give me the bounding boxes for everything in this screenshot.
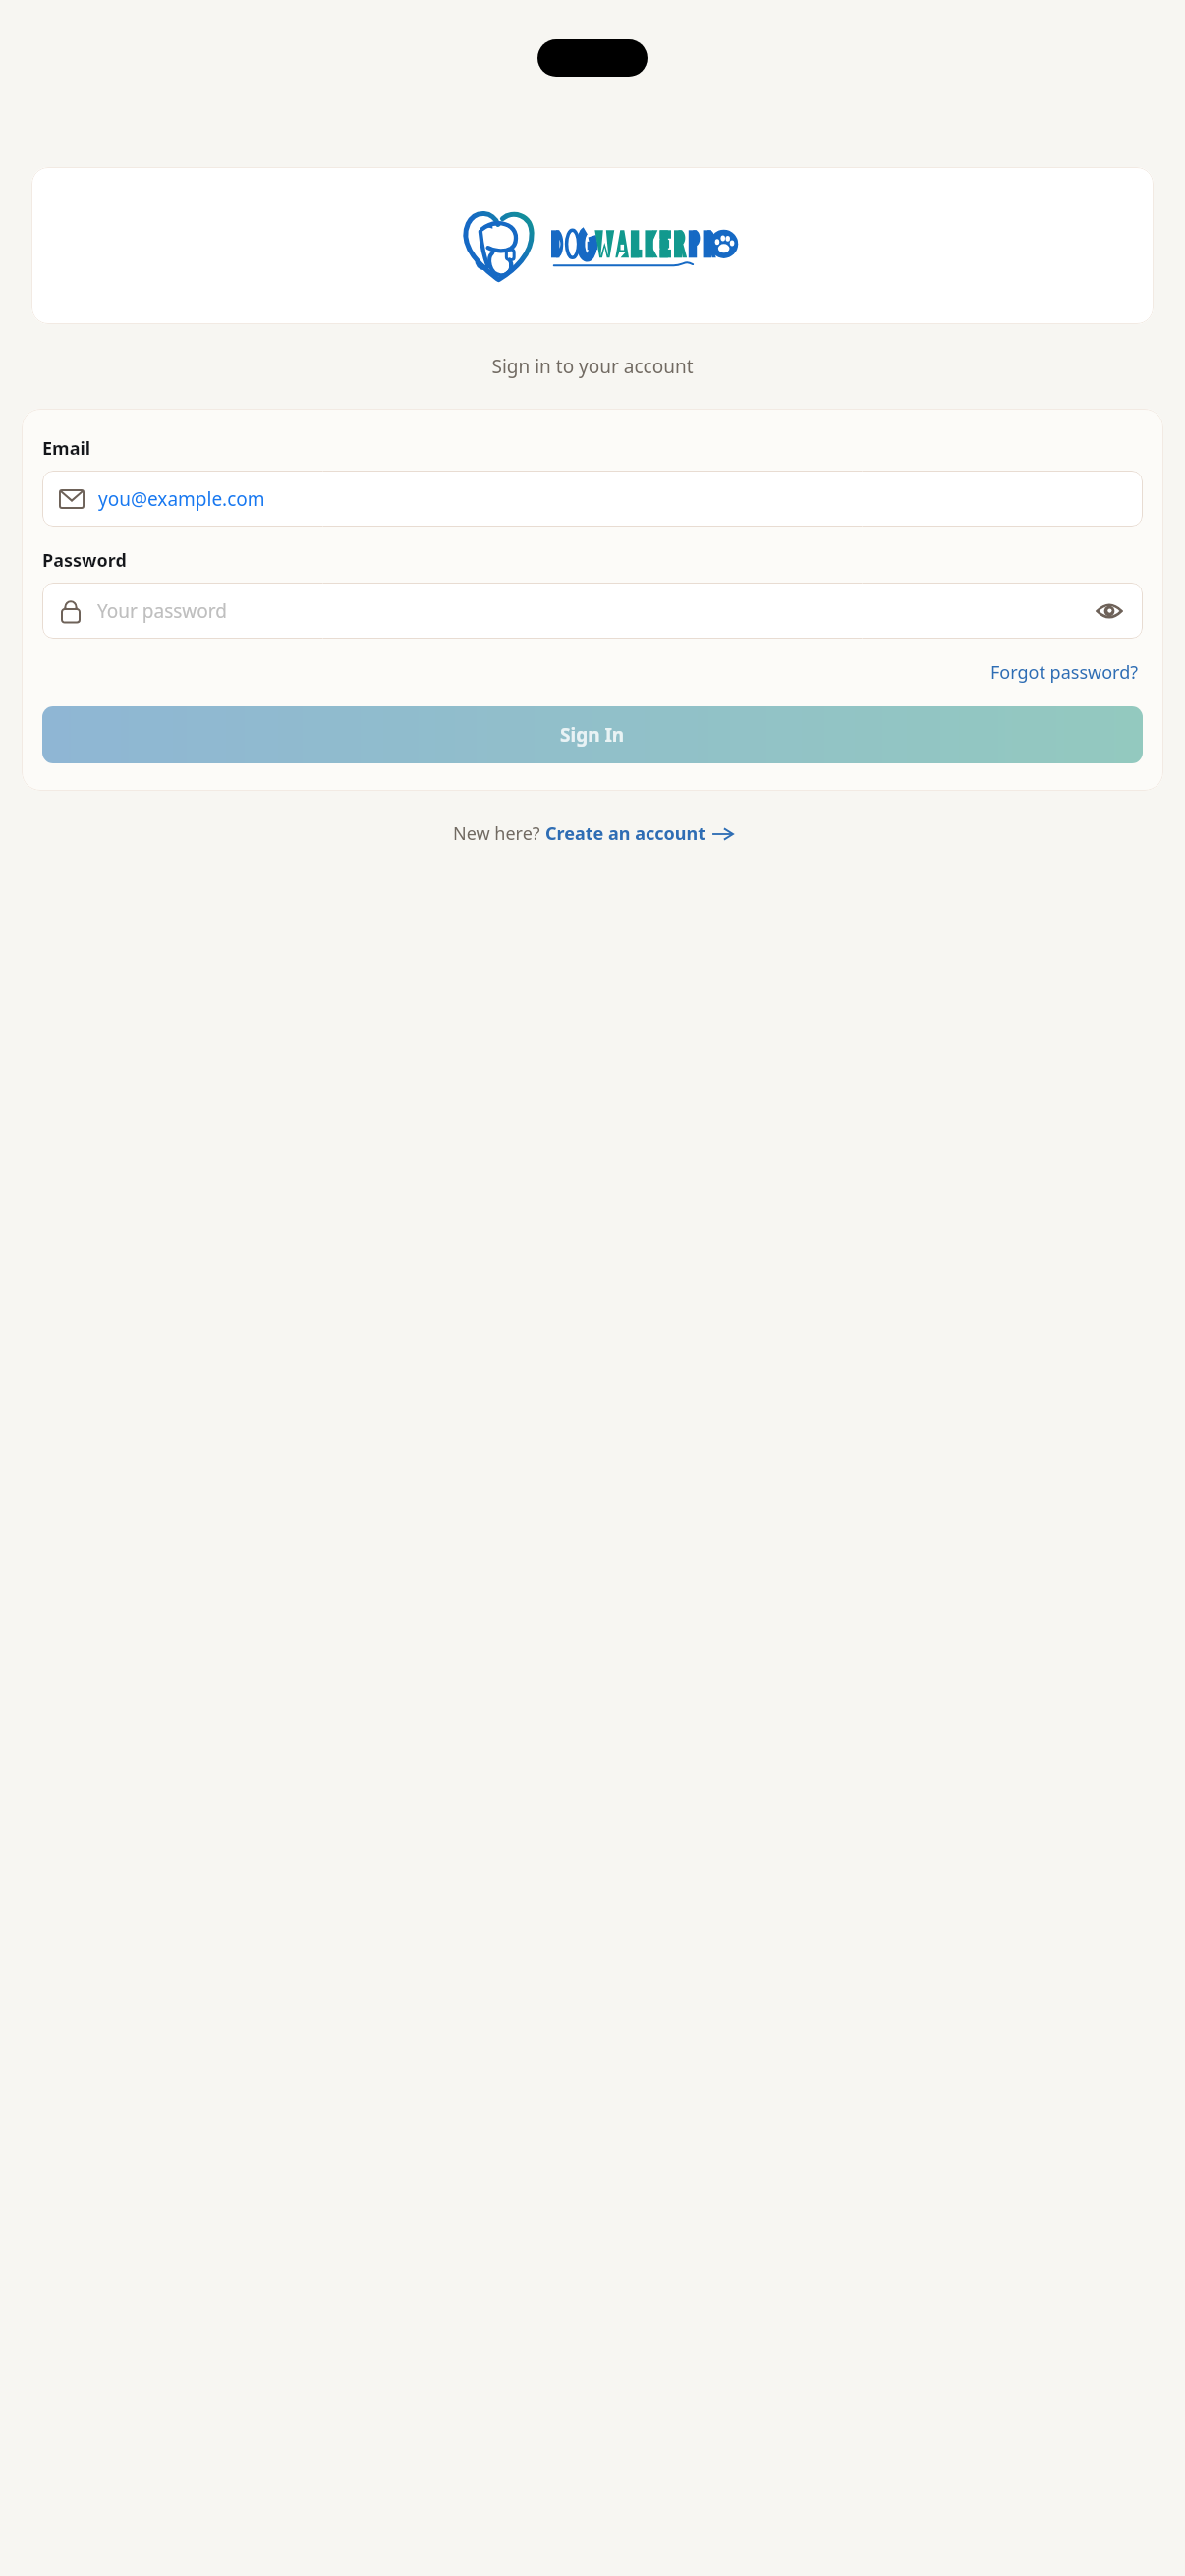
staticText: New here? xyxy=(453,821,545,846)
button[interactable]: you@example.com xyxy=(42,471,1143,527)
staticText: Your password xyxy=(97,598,1090,624)
button[interactable]: Forgot password? xyxy=(987,656,1143,689)
staticText: Forgot password? xyxy=(990,660,1139,685)
staticText: you@example.com xyxy=(98,486,265,512)
staticText: Create an account xyxy=(545,821,705,846)
staticText: Sign in to your account xyxy=(0,354,1185,379)
staticText: Password xyxy=(42,548,127,573)
button[interactable]: Show password xyxy=(1090,591,1129,631)
button[interactable]: Your password xyxy=(42,583,1143,639)
staticText: Email xyxy=(42,436,91,461)
button[interactable]: Create an account xyxy=(545,817,733,850)
button[interactable]: Sign In xyxy=(42,706,1143,763)
staticText: Sign In xyxy=(560,722,625,748)
